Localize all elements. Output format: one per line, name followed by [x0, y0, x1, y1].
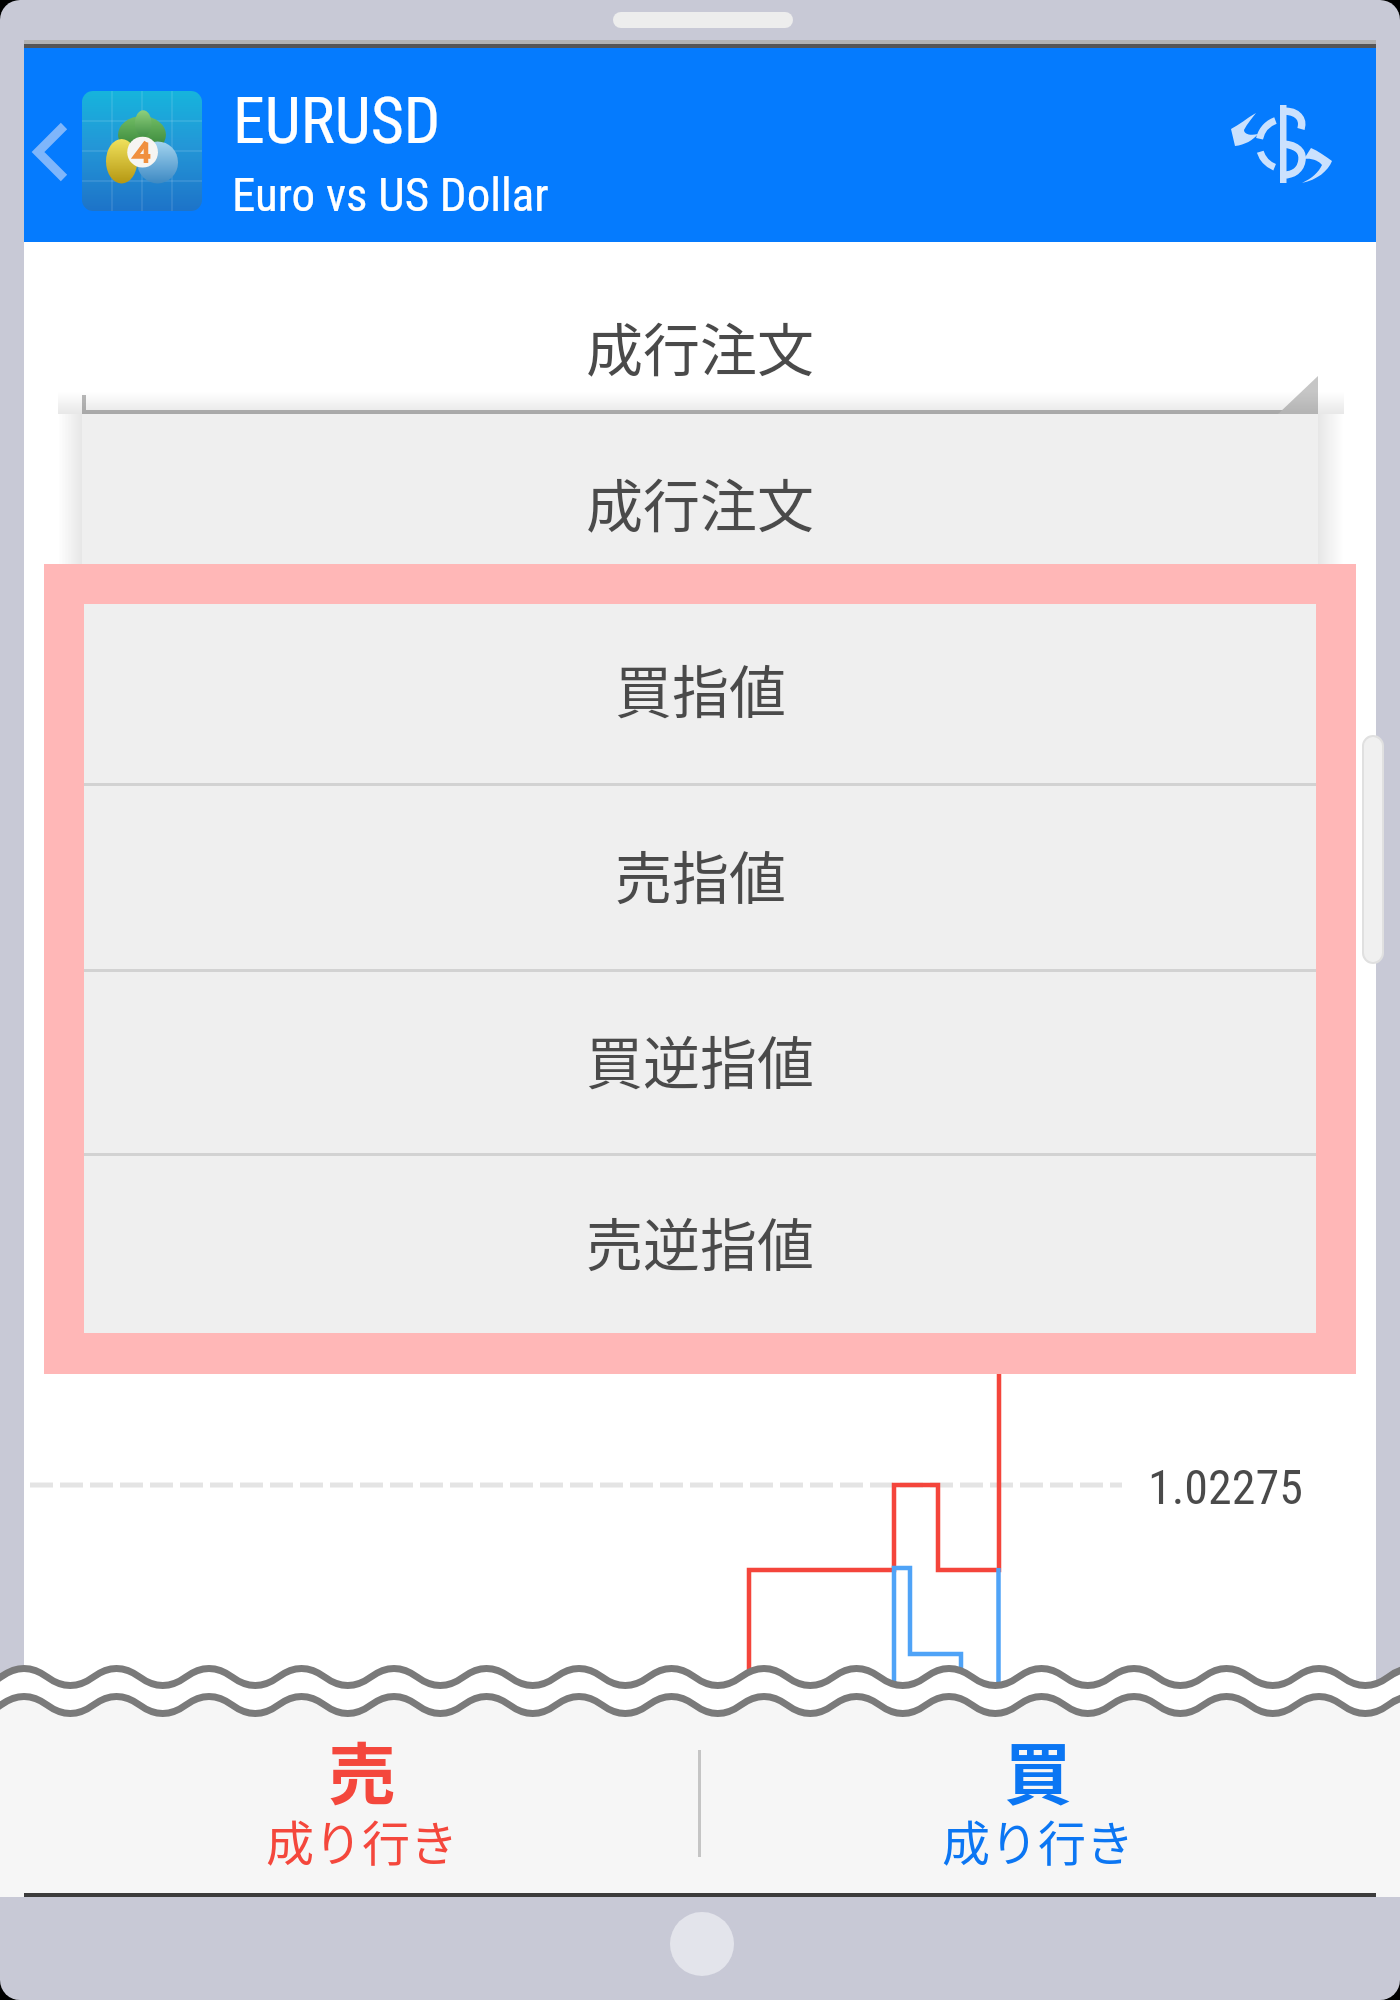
button[interactable]: 売指値 [82, 786, 1318, 969]
staticText: 売指値 [615, 833, 786, 916]
button[interactable]: 売逆指値 [82, 1156, 1318, 1333]
staticText: 1.02275 [1148, 1459, 1303, 1515]
staticText: 成行注文 [586, 461, 814, 544]
staticText: 買指値 [615, 647, 786, 730]
staticText: Euro vs US Dollar [232, 167, 549, 222]
button[interactable]: 成行注文 [82, 414, 1318, 597]
button[interactable]: Back [24, 48, 1376, 242]
button[interactable]: 売 [24, 1711, 700, 1892]
button[interactable]: 買指値 [82, 600, 1318, 783]
button[interactable]: 買 [700, 1711, 1376, 1892]
button[interactable]: 買逆指値 [82, 972, 1318, 1153]
staticText: EURUSD [233, 84, 441, 159]
staticText: 成行注文 [24, 305, 1376, 388]
staticText: 買逆指値 [586, 1018, 814, 1101]
staticText: 成り行き [24, 1805, 700, 1875]
button[interactable]: Currency conversion [1180, 70, 1330, 220]
staticText: 売 [24, 1721, 700, 1818]
staticText: 成り行き [700, 1805, 1376, 1875]
staticText: 売逆指値 [586, 1200, 814, 1283]
button[interactable]: Back [24, 96, 94, 192]
staticText: 買 [700, 1721, 1376, 1818]
